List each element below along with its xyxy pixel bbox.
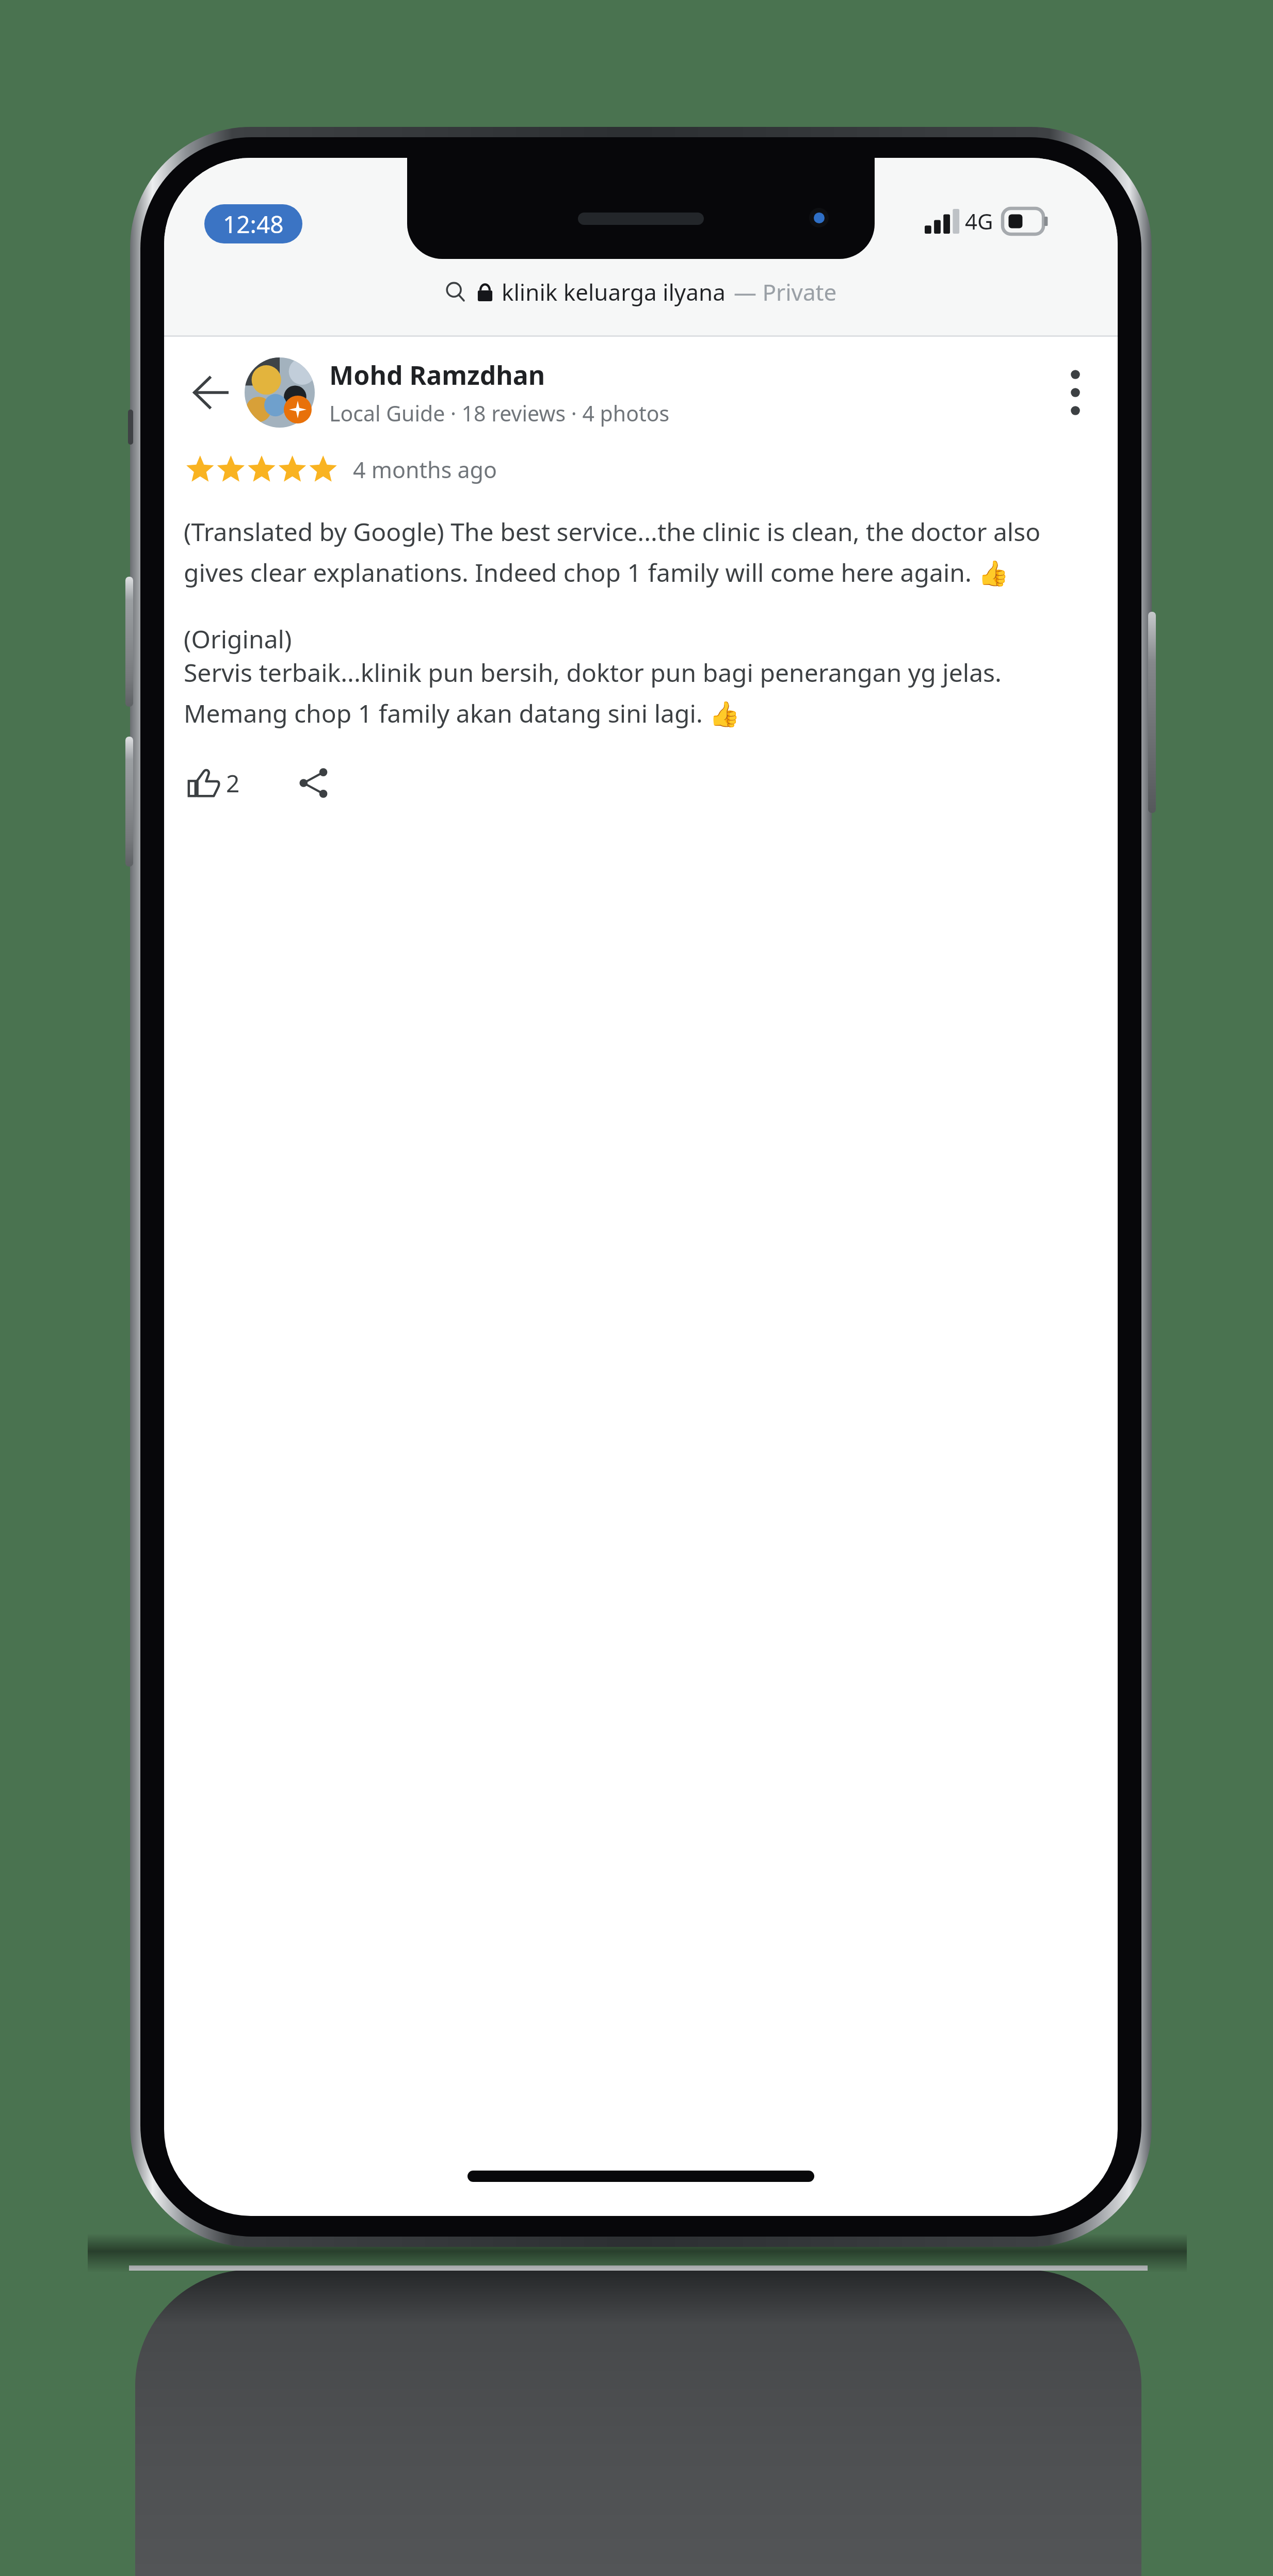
- staticText: Servis terbaik...klinik pun bersih, dokt…: [184, 656, 1096, 730]
- button[interactable]: klinik keluarga ilyana: [164, 276, 1118, 307]
- staticText: (Translated by Google) The best service.…: [184, 515, 1096, 589]
- button[interactable]: 2: [179, 760, 249, 807]
- staticText: 4G: [965, 206, 993, 236]
- staticText: 2: [226, 767, 240, 800]
- staticText: klinik keluarga ilyana: [502, 276, 726, 307]
- staticText: Mohd Ramzdhan: [329, 357, 545, 393]
- button[interactable]: Share: [289, 759, 338, 807]
- button[interactable]: Back: [180, 362, 241, 423]
- staticText: — Private: [734, 276, 837, 307]
- staticText: (Original): [184, 622, 292, 656]
- staticText: Local Guide · 18 reviews · 4 photos: [329, 399, 670, 428]
- staticText: 12:48: [223, 208, 284, 240]
- staticText: 4 months ago: [353, 454, 497, 485]
- button[interactable]: More options: [1046, 364, 1104, 421]
